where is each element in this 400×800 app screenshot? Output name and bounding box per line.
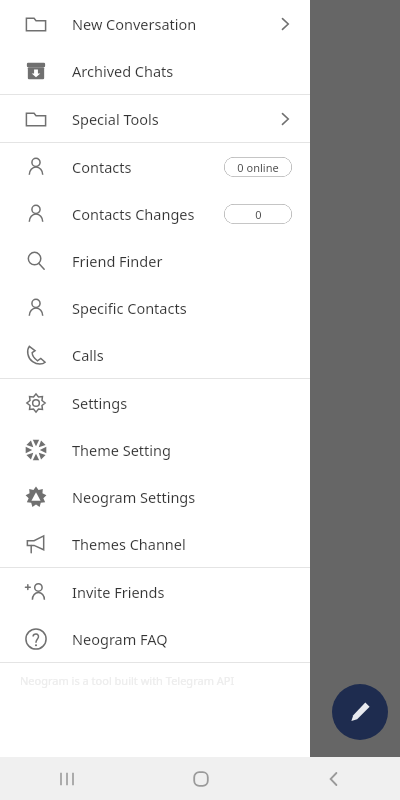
staticText: Contacts Changes bbox=[72, 204, 195, 224]
button[interactable]: Compose new message bbox=[332, 684, 388, 740]
staticText: Neogram is a tool built with Telegram AP… bbox=[20, 673, 290, 688]
staticText: Invite Friends bbox=[72, 582, 165, 602]
staticText: Themes Channel bbox=[72, 534, 186, 554]
button[interactable]: Invite Friends bbox=[0, 568, 310, 615]
button[interactable]: Specific Contacts bbox=[0, 284, 310, 331]
button[interactable]: Contacts Changes bbox=[0, 190, 310, 237]
staticText: Theme Setting bbox=[72, 440, 171, 460]
button[interactable]: Back bbox=[267, 757, 400, 800]
staticText: Neogram FAQ bbox=[72, 629, 168, 649]
button[interactable]: Settings bbox=[0, 379, 310, 426]
staticText: Special Tools bbox=[72, 109, 159, 129]
button[interactable]: Special Tools bbox=[0, 95, 310, 142]
button[interactable]: Archived Chats bbox=[0, 47, 310, 94]
button[interactable]: Contacts bbox=[0, 143, 310, 190]
button[interactable]: Recent apps bbox=[0, 757, 134, 800]
button[interactable]: Friend Finder bbox=[0, 237, 310, 284]
staticText: 0 bbox=[255, 207, 262, 222]
staticText: Friend Finder bbox=[72, 251, 163, 271]
button[interactable]: Neogram Settings bbox=[0, 473, 310, 520]
button[interactable]: Calls bbox=[0, 331, 310, 378]
button[interactable]: New Conversation bbox=[0, 0, 310, 47]
staticText: New Conversation bbox=[72, 14, 197, 34]
button[interactable]: Theme Setting bbox=[0, 426, 310, 473]
staticText: Neogram Settings bbox=[72, 487, 196, 507]
staticText: Calls bbox=[72, 345, 104, 365]
staticText: 0 online bbox=[237, 160, 279, 175]
staticText: Settings bbox=[72, 393, 128, 413]
button[interactable]: Themes Channel bbox=[0, 520, 310, 567]
button[interactable]: Neogram FAQ bbox=[0, 615, 310, 662]
staticText: Contacts bbox=[72, 157, 132, 177]
staticText: Archived Chats bbox=[72, 61, 174, 81]
staticText: Specific Contacts bbox=[72, 298, 187, 318]
button[interactable]: Home bbox=[134, 757, 267, 800]
button[interactable]: Contacts tab bbox=[300, 56, 336, 92]
